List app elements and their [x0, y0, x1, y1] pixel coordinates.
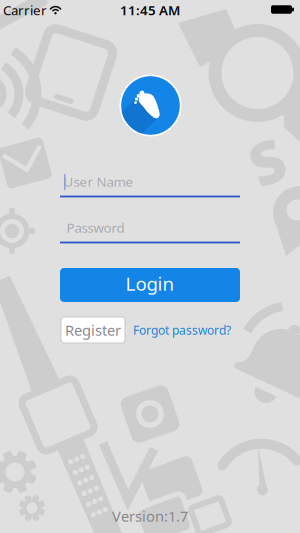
- staticText: S: [250, 122, 284, 200]
- staticText: Carrier: [3, 1, 47, 19]
- staticText: Version:1.7: [112, 506, 188, 526]
- button[interactable]: Register: [61, 317, 125, 343]
- staticText: Password: [66, 219, 124, 236]
- staticText: Forgot password?: [133, 322, 231, 338]
- staticText: User Name: [63, 173, 133, 190]
- staticText: Login: [125, 271, 174, 296]
- button[interactable]: Login: [60, 268, 240, 302]
- staticText: Register: [65, 320, 121, 340]
- button[interactable]: Password: [60, 215, 240, 245]
- button[interactable]: Forgot password?: [133, 322, 231, 338]
- button[interactable]: User Name: [60, 169, 240, 199]
- staticText: 11:45 AM: [120, 1, 180, 19]
